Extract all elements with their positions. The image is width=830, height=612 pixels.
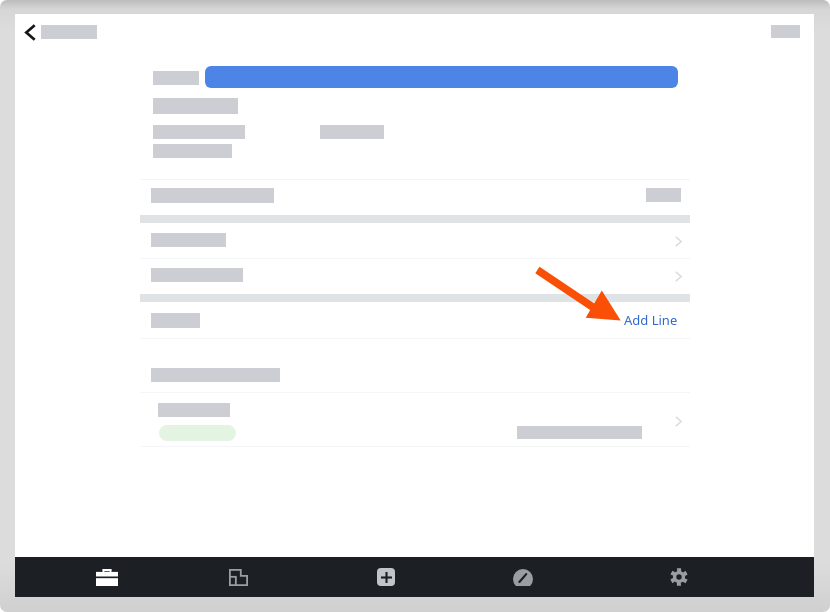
button[interactable]: Plans [196,557,280,597]
button[interactable] [140,393,690,446]
button[interactable]: Add new [344,557,428,597]
button[interactable]: Add Line [618,305,684,335]
button[interactable]: Back [15,14,47,56]
button[interactable]: Settings [637,557,721,597]
staticText: Add Line [624,311,678,329]
button[interactable] [140,223,690,258]
button[interactable]: More options [763,17,807,45]
button[interactable]: Jobs [65,557,149,597]
button[interactable] [140,259,690,294]
button[interactable]: Dashboard [481,557,565,597]
